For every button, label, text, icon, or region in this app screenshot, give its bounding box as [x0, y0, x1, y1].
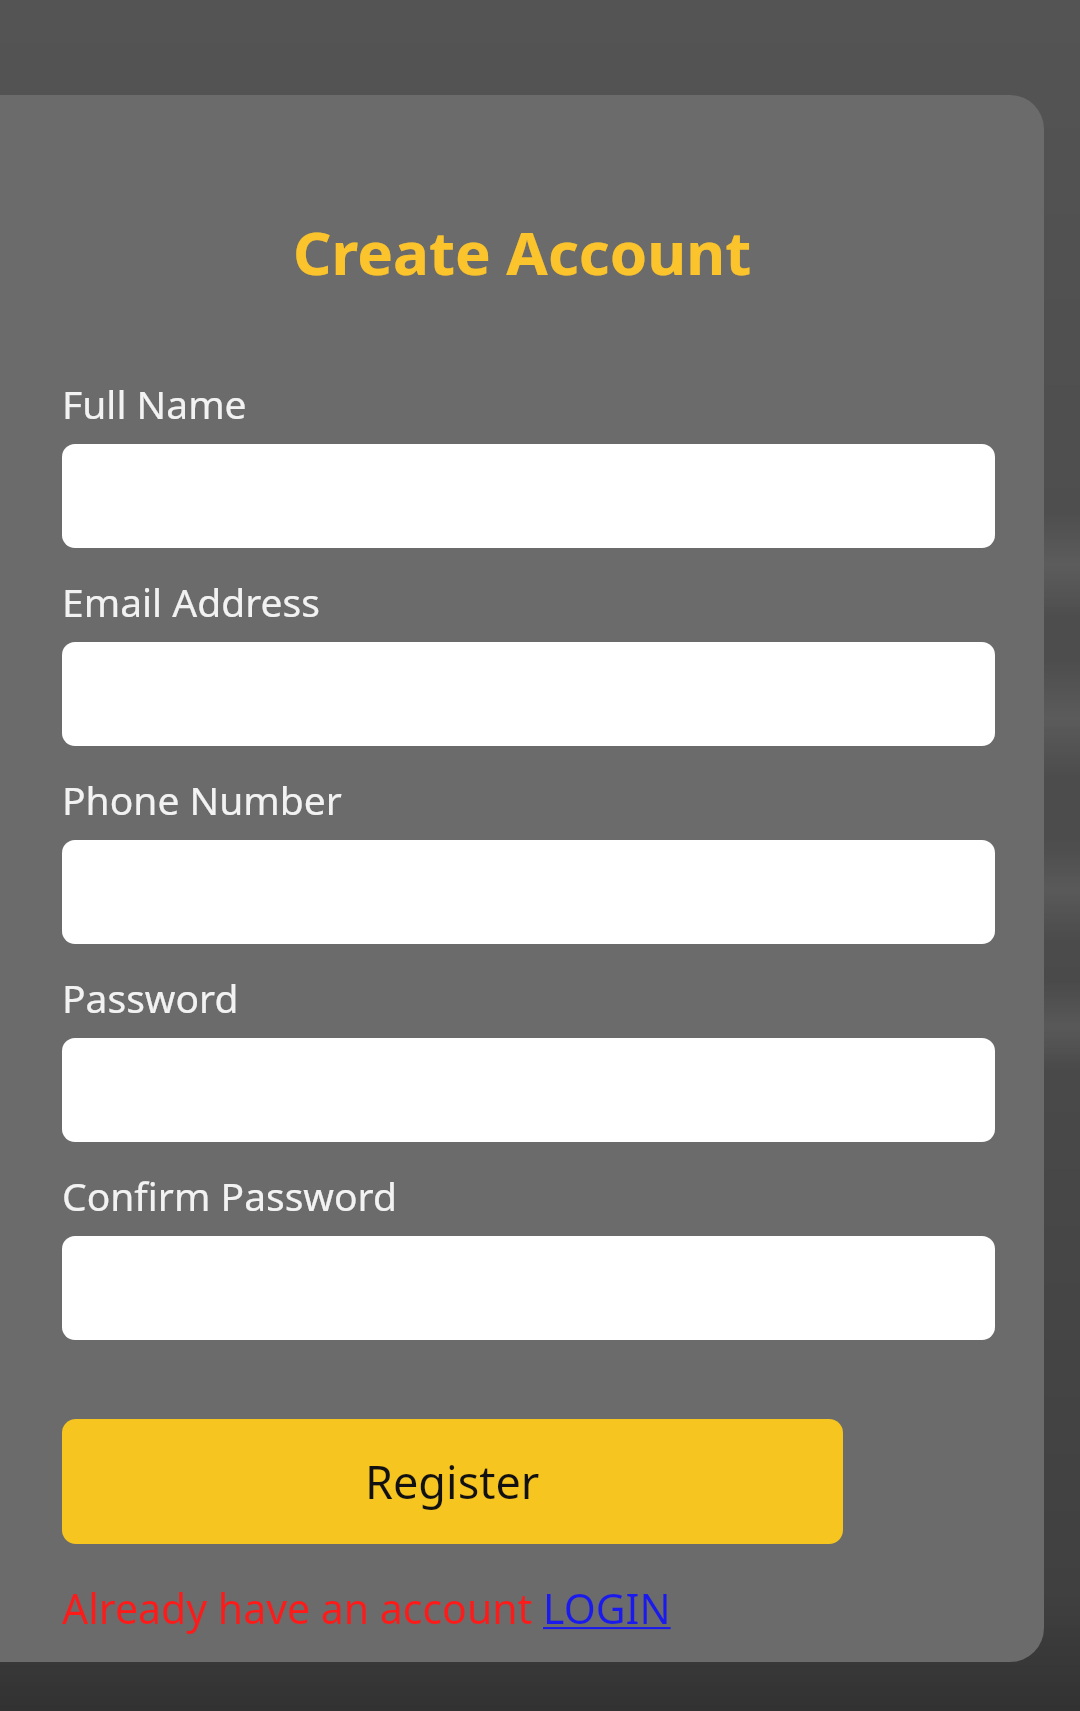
button[interactable]: Full Name [62, 444, 995, 548]
button[interactable]: Password [62, 1038, 995, 1142]
staticText: Email Address [62, 575, 320, 628]
staticText: Password [62, 971, 239, 1024]
staticText: Full Name [62, 377, 247, 430]
staticText: Register [365, 1451, 540, 1512]
staticText: Already have an account LOGIN [62, 1580, 671, 1636]
button[interactable]: Already have an account LOGIN [62, 1580, 671, 1636]
button[interactable]: Register [62, 1419, 843, 1544]
staticText: Confirm Password [62, 1169, 397, 1222]
staticText: Create Account [293, 211, 752, 293]
button[interactable]: Phone Number [62, 840, 995, 944]
button[interactable]: Email Address [62, 642, 995, 746]
staticText: Phone Number [62, 773, 342, 826]
button[interactable]: Confirm Password [62, 1236, 995, 1340]
